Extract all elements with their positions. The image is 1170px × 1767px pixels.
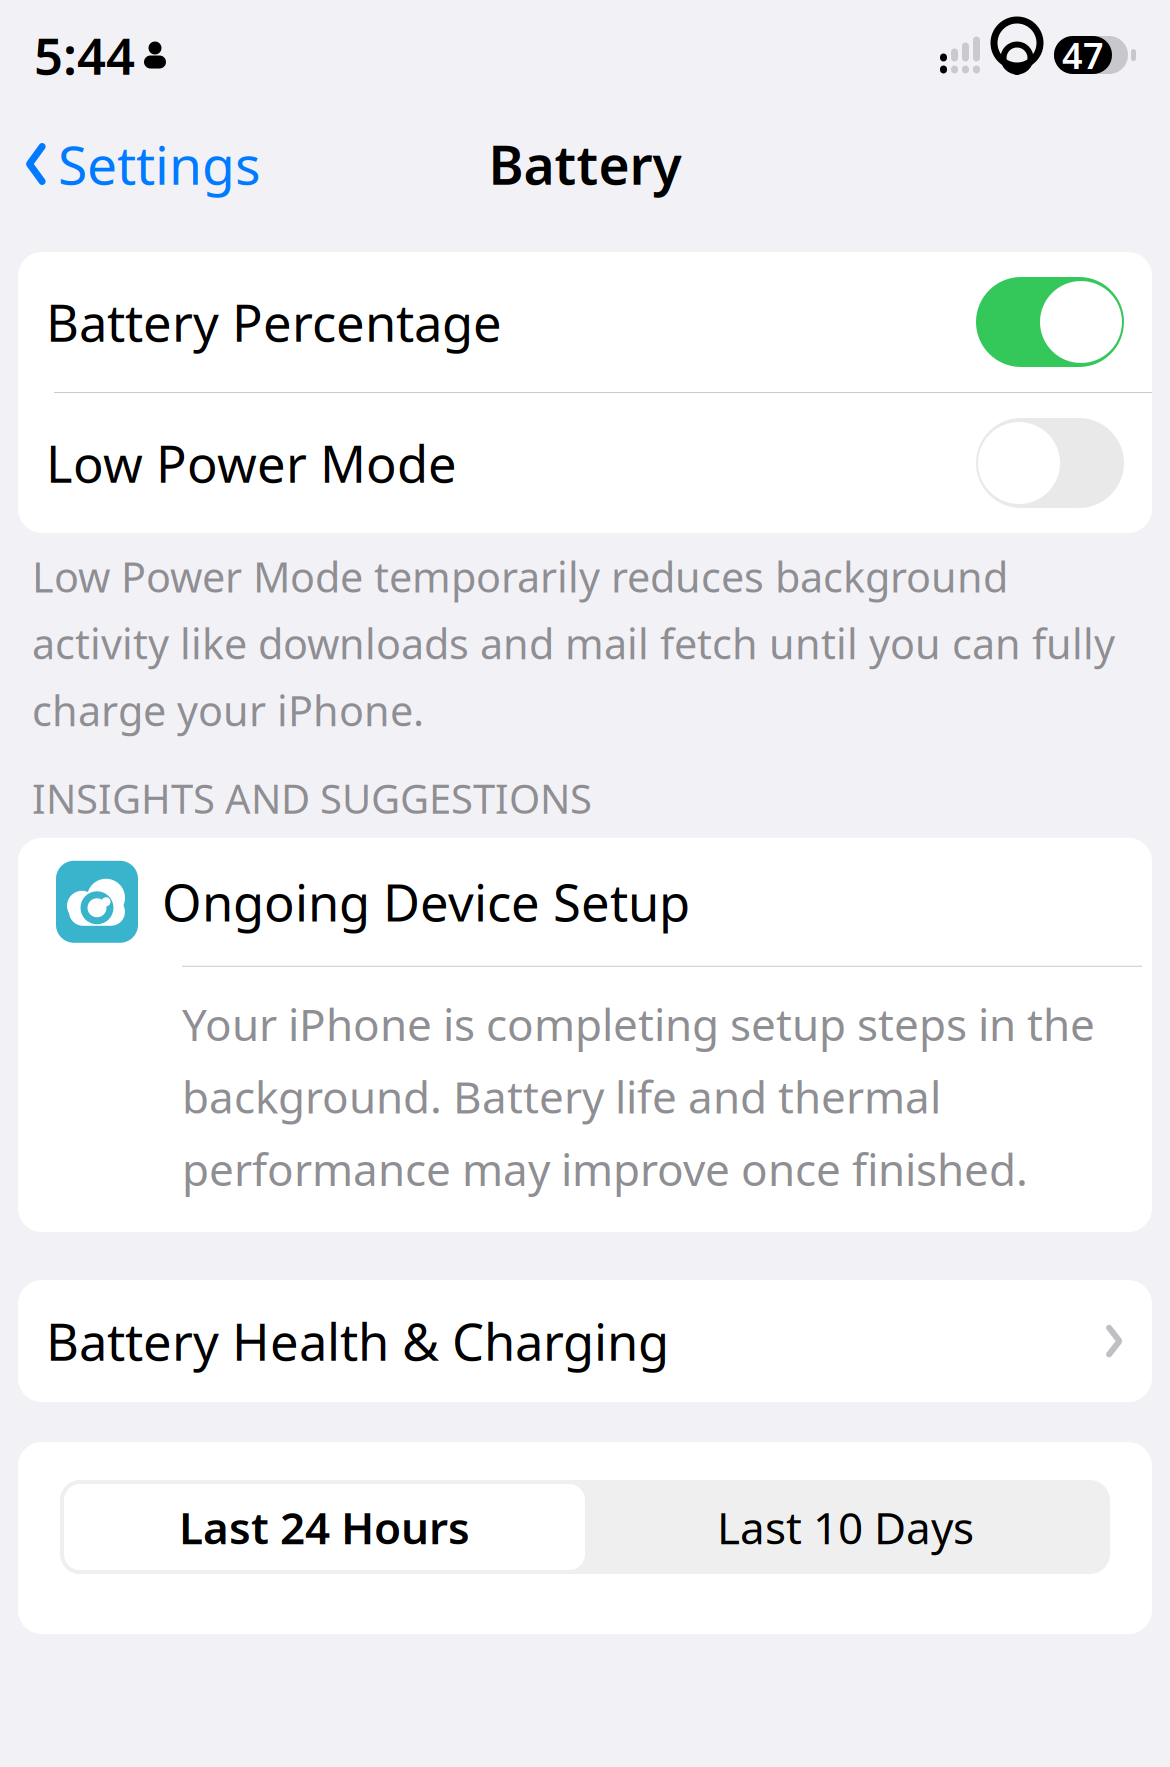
staticText: Low Power Mode <box>46 429 457 497</box>
staticText: Your iPhone is completing setup steps in… <box>182 995 1095 1198</box>
staticText: Last 10 Days <box>717 1498 974 1556</box>
staticText: Battery Percentage <box>46 288 502 356</box>
staticText: Battery <box>488 129 681 199</box>
staticText: Last 24 Hours <box>179 1498 470 1556</box>
button[interactable]: Last 10 Days <box>585 1484 1106 1570</box>
staticText: 5:44 <box>34 21 135 89</box>
staticText: Low Power Mode temporarily reduces backg… <box>32 549 1115 738</box>
staticText: Battery Health & Charging <box>46 1307 669 1375</box>
staticText: Settings <box>58 129 261 199</box>
button[interactable]: Battery Health & Charging <box>18 1280 1152 1402</box>
staticText: 47 <box>1062 31 1104 79</box>
button[interactable]: Ongoing Device Setup <box>18 838 1152 1232</box>
button[interactable]: Last 24 Hours <box>64 1484 585 1570</box>
staticText: Ongoing Device Setup <box>162 868 690 935</box>
button[interactable]: Low Power Mode <box>18 393 1152 533</box>
staticText: INSIGHTS AND SUGGESTIONS <box>32 772 592 825</box>
button[interactable]: Settings <box>24 119 271 209</box>
button[interactable]: Battery Percentage <box>18 252 1152 392</box>
